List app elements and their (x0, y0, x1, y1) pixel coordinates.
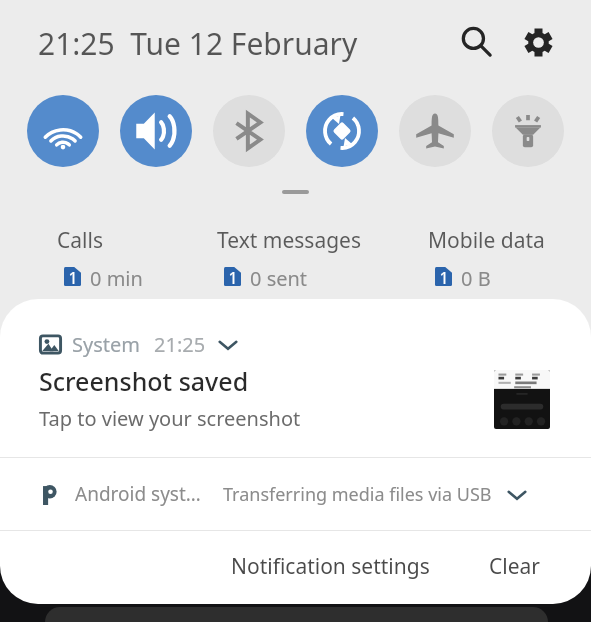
button[interactable]: Clear (477, 544, 552, 589)
button[interactable]: Sound (120, 95, 192, 167)
staticText: Mobile data (428, 226, 545, 255)
staticText: Transferring media files via USB (223, 482, 492, 507)
staticText: 0 B (461, 265, 491, 288)
staticText: Screenshot saved (39, 364, 249, 398)
staticText: 1 (439, 267, 449, 286)
staticText: 21:25 Tue 12 February (38, 23, 358, 64)
button[interactable]: Flight mode (399, 95, 471, 167)
staticText: 21:25 (154, 331, 206, 358)
button[interactable]: Auto sync (306, 95, 378, 167)
button[interactable]: Settings (515, 19, 561, 65)
button[interactable]: Wi-Fi (27, 95, 99, 167)
button[interactable]: Android syst… (0, 458, 591, 530)
button[interactable]: Expand notification (213, 329, 243, 359)
staticText: Notification settings (231, 552, 430, 581)
staticText: 0 sent (250, 265, 308, 288)
staticText: Calls (57, 226, 103, 255)
staticText: 0 min (90, 265, 143, 288)
staticText: Clear (489, 552, 540, 581)
button[interactable]: System (0, 299, 591, 457)
button[interactable]: Torch (492, 95, 564, 167)
staticText: Android syst… (75, 481, 201, 507)
button[interactable]: Mobile data (428, 226, 545, 288)
other: Expand (282, 190, 309, 194)
staticText: Tap to view your screenshot (39, 405, 301, 432)
button[interactable]: Bluetooth (213, 95, 285, 167)
staticText: 1 (228, 267, 238, 286)
button[interactable]: Notification settings (219, 544, 442, 589)
staticText: 1 (68, 267, 78, 286)
staticText: Text messages (217, 226, 361, 255)
staticText: System (72, 331, 140, 358)
button[interactable]: Search (453, 18, 499, 64)
button[interactable]: Calls (57, 226, 143, 288)
button[interactable]: Text messages (217, 226, 361, 288)
